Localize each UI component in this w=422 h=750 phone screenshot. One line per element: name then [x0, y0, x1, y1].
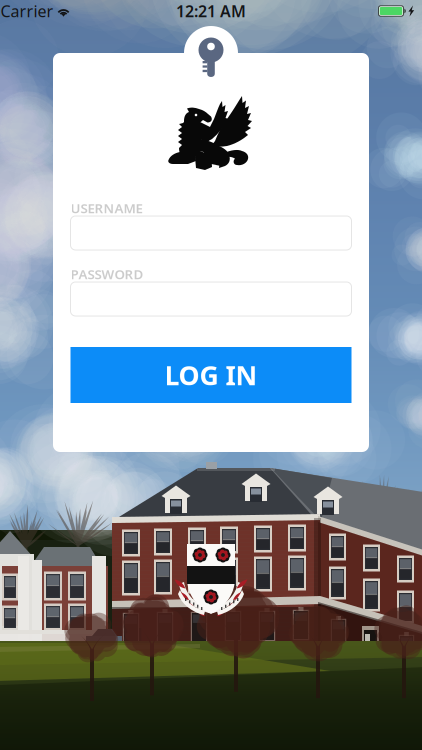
staticText: USERNAME [70, 199, 142, 217]
button[interactable]: LOG IN [70, 347, 351, 403]
staticText: LOG IN [164, 357, 257, 393]
staticText: Carrier [0, 0, 53, 22]
staticText: 12:21 AM [176, 0, 246, 22]
staticText: PASSWORD [70, 265, 143, 283]
